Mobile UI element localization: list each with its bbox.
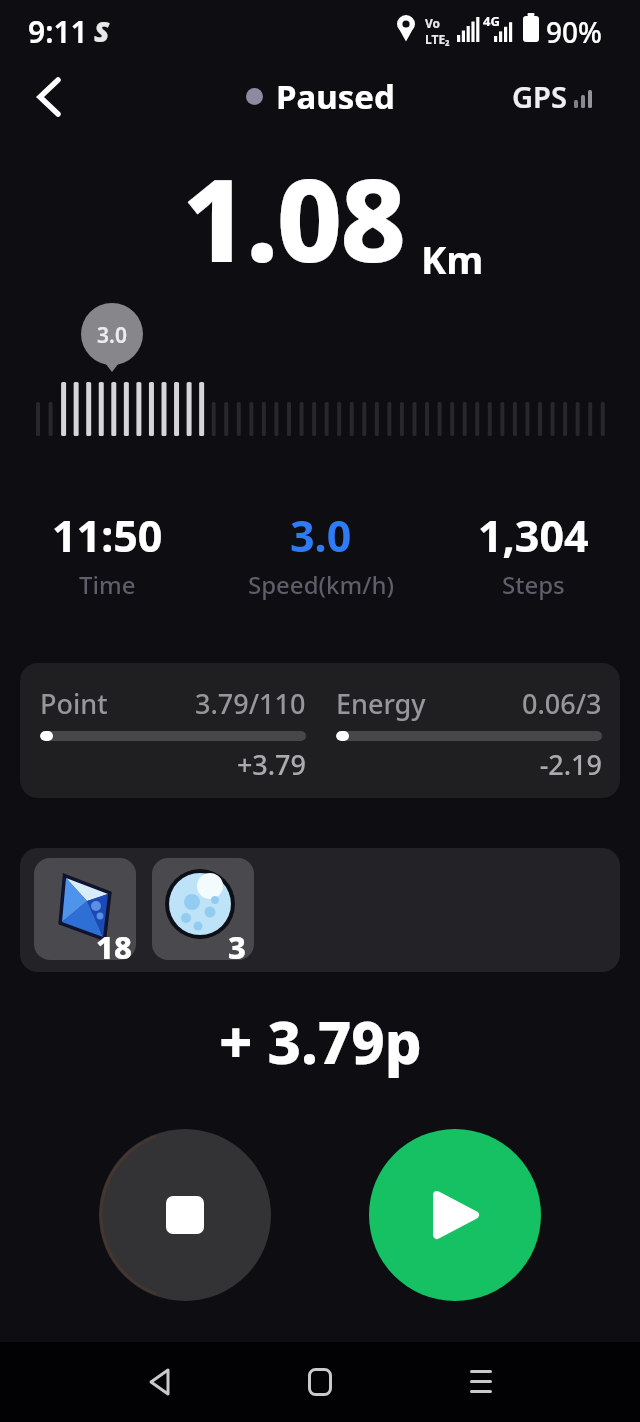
staticText: Time <box>79 568 136 601</box>
staticText: Km <box>421 233 484 285</box>
staticText: S <box>94 12 110 50</box>
staticText: Point <box>40 685 108 722</box>
staticText: 18 <box>96 926 132 968</box>
staticText: 9:11 <box>28 11 88 52</box>
staticText: 1,304 <box>478 506 589 565</box>
staticText: -2.19 <box>336 746 602 783</box>
staticText: Speed(km/h) <box>248 568 394 601</box>
staticText: Vo <box>425 15 441 31</box>
staticText: Energy <box>336 685 426 722</box>
staticText: 3.0 <box>80 321 144 350</box>
staticText: + 3.79p <box>219 1002 422 1081</box>
staticText: Paused <box>276 74 395 119</box>
staticText: 0.06/3 <box>522 685 602 722</box>
staticText: 3 <box>228 926 246 968</box>
staticText: GPS <box>512 77 567 116</box>
staticText: 11:50 <box>52 506 163 565</box>
staticText: +3.79 <box>40 746 306 783</box>
staticText: 1.08 <box>182 140 405 295</box>
staticText: 4G <box>483 12 500 30</box>
staticText: 3.79/110 <box>195 685 306 722</box>
staticText: 90% <box>546 13 602 51</box>
staticText: Steps <box>502 568 565 601</box>
staticText: LTE₂ <box>425 31 450 47</box>
staticText: 3.0 <box>290 506 352 565</box>
